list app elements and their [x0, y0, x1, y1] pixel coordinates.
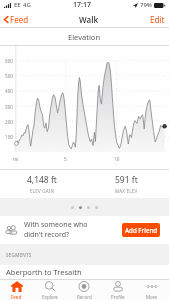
staticText: ELEV GAIN	[30, 188, 55, 194]
other: Friends	[5, 225, 18, 235]
button[interactable]: Edit	[149, 13, 166, 26]
button[interactable]: Aberporth to Tresaith	[0, 265, 169, 279]
staticText: mi	[13, 156, 19, 162]
staticText: Walk	[79, 14, 99, 25]
staticText: 4G	[23, 1, 31, 9]
staticText: EE	[14, 1, 21, 9]
staticText: 17:17	[73, 0, 91, 10]
staticText: Record	[77, 294, 92, 300]
staticText: With someone who	[24, 220, 88, 230]
button[interactable]: Profile	[101, 280, 135, 300]
staticText: 4,148 ft	[27, 174, 57, 186]
staticText: 600	[5, 58, 13, 64]
staticText: didn't record?	[24, 230, 69, 240]
staticText: Feed	[10, 14, 29, 25]
staticText: Explore	[42, 294, 58, 300]
staticText: MAX ELEV	[115, 188, 138, 194]
staticText: Feed	[11, 294, 22, 300]
staticText: SEGMENTS	[6, 252, 32, 258]
staticText: 591 ft	[115, 174, 138, 186]
staticText: 100	[5, 134, 13, 140]
button[interactable]: Explore	[33, 280, 67, 300]
staticText: 200	[5, 119, 13, 125]
button[interactable]: Feed	[0, 280, 33, 300]
staticText: 79%	[140, 1, 152, 9]
staticText: Elevation	[68, 32, 101, 42]
staticText: More	[146, 294, 158, 300]
button[interactable]: Add Friend	[122, 223, 160, 237]
staticText: 300	[5, 104, 13, 110]
staticText: 500	[5, 73, 13, 79]
staticText: 10	[114, 156, 120, 162]
button[interactable]: More	[135, 280, 169, 300]
staticText: Aberporth to Tresaith	[6, 267, 82, 277]
staticText: Add Friend	[125, 226, 158, 234]
button[interactable]: Feed	[3, 13, 30, 26]
staticText: Profile	[111, 294, 125, 300]
staticText: 400	[5, 88, 13, 94]
staticText: Edit	[150, 14, 165, 25]
staticText: 5	[64, 156, 67, 162]
button[interactable]: Record	[67, 280, 101, 300]
